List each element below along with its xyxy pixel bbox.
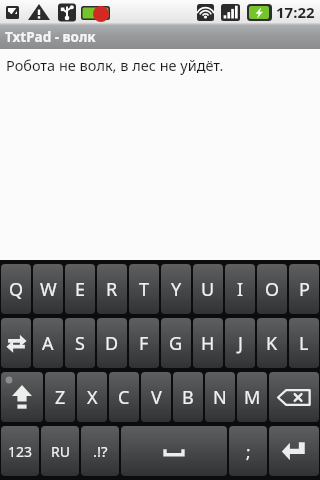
staticText: L — [299, 331, 309, 356]
button[interactable]: P — [289, 264, 319, 314]
button[interactable]: Backspace — [269, 372, 319, 422]
button[interactable]: 123 — [1, 426, 39, 476]
staticText: U — [201, 277, 215, 302]
button[interactable]: Q — [1, 264, 31, 314]
button[interactable]: M — [237, 372, 267, 422]
button[interactable]: N — [205, 372, 235, 422]
button[interactable]: Enter — [269, 426, 319, 476]
staticText: 17:22 — [276, 2, 315, 22]
button[interactable]: RU — [41, 426, 79, 476]
button[interactable]: I — [225, 264, 255, 314]
button[interactable]: Z — [45, 372, 75, 422]
button[interactable]: X — [77, 372, 107, 422]
staticText: N — [213, 385, 227, 410]
button[interactable]: S — [65, 318, 95, 368]
staticText: J — [238, 331, 243, 356]
button[interactable]: J — [225, 318, 255, 368]
staticText: T — [139, 277, 150, 302]
staticText: G — [169, 331, 183, 356]
button[interactable]: L — [289, 318, 319, 368]
button[interactable]: D — [97, 318, 127, 368]
button[interactable]: R — [97, 264, 127, 314]
button[interactable]: E — [65, 264, 95, 314]
staticText: X — [87, 385, 98, 410]
staticText: R — [106, 277, 118, 302]
staticText: D — [105, 331, 119, 356]
staticText: ; — [246, 440, 251, 463]
staticText: I — [237, 277, 244, 302]
button[interactable]: K — [257, 318, 287, 368]
staticText: Y — [171, 277, 182, 302]
button[interactable]: W — [33, 264, 63, 314]
button[interactable]: Switch language — [1, 318, 31, 368]
button[interactable]: C — [109, 372, 139, 422]
staticText: W — [40, 277, 57, 302]
button[interactable]: B — [173, 372, 203, 422]
staticText: O — [265, 277, 280, 302]
staticText: 123 — [8, 442, 33, 461]
button[interactable]: H — [193, 318, 223, 368]
button[interactable]: A — [33, 318, 63, 368]
button[interactable]: .!? — [81, 426, 119, 476]
staticText: H — [201, 331, 215, 356]
staticText: A — [42, 331, 54, 356]
staticText: Z — [55, 385, 66, 410]
staticText: Q — [9, 277, 24, 302]
staticText: M — [244, 385, 261, 410]
button[interactable]: ; — [229, 426, 267, 476]
button[interactable]: G — [161, 318, 191, 368]
staticText: Робота не волк, в лес не уйдёт. — [6, 55, 224, 75]
button[interactable]: F — [129, 318, 159, 368]
staticText: RU — [51, 442, 70, 461]
staticText: .!? — [93, 441, 108, 461]
button[interactable]: V — [141, 372, 171, 422]
staticText: S — [75, 331, 85, 356]
staticText: P — [299, 277, 310, 302]
staticText: TxtPad - волк — [5, 28, 96, 46]
staticText: B — [182, 385, 194, 410]
button[interactable]: Shift — [1, 372, 43, 422]
button[interactable]: T — [129, 264, 159, 314]
button[interactable]: Y — [161, 264, 191, 314]
button[interactable]: O — [257, 264, 287, 314]
button[interactable]: U — [193, 264, 223, 314]
button[interactable]: Space — [121, 426, 227, 476]
staticText: E — [75, 277, 86, 302]
staticText: F — [139, 331, 149, 356]
staticText: K — [266, 331, 278, 356]
staticText: V — [151, 385, 162, 410]
staticText: C — [118, 385, 130, 410]
